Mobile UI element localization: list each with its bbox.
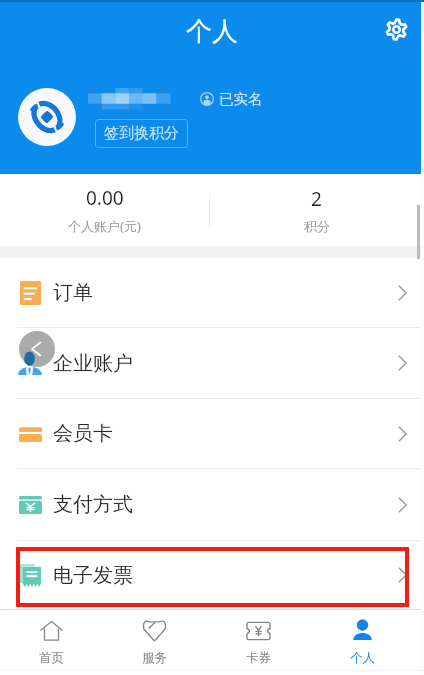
- staticText: 个人账户(元): [68, 217, 141, 235]
- staticText: 服务: [142, 650, 167, 666]
- staticText: 已实名: [219, 90, 263, 108]
- staticText: 个人: [186, 15, 238, 48]
- button[interactable]: 服务: [103, 610, 206, 675]
- button[interactable]: 会员卡: [0, 399, 424, 468]
- staticText: 电子发票: [53, 563, 133, 588]
- button[interactable]: 首页: [0, 610, 103, 675]
- button[interactable]: 订单: [0, 258, 424, 327]
- staticText: 订单: [53, 280, 93, 305]
- staticText: 2: [311, 186, 322, 212]
- button[interactable]: 0.00: [0, 174, 209, 246]
- staticText: 会员卡: [53, 421, 113, 446]
- button[interactable]: 2: [209, 174, 424, 246]
- staticText: 积分: [304, 218, 330, 234]
- staticText: 企业账户: [53, 351, 133, 376]
- button[interactable]: Settings: [378, 11, 414, 47]
- button[interactable]: 签到换积分: [95, 119, 188, 148]
- button[interactable]: Back: [19, 331, 55, 367]
- button[interactable]: 支付方式: [0, 469, 424, 540]
- staticText: 0.00: [86, 185, 124, 211]
- button[interactable]: 个人: [310, 610, 414, 675]
- button[interactable]: 电子发票: [0, 541, 424, 609]
- button[interactable]: 卡券: [206, 610, 310, 675]
- staticText: 支付方式: [53, 492, 133, 517]
- button[interactable]: [18, 88, 76, 146]
- staticText: 个人: [350, 650, 375, 666]
- staticText: 签到换积分: [104, 124, 179, 143]
- staticText: 首页: [39, 650, 64, 666]
- staticText: 卡券: [246, 650, 271, 666]
- button[interactable]: 企业账户: [0, 328, 424, 398]
